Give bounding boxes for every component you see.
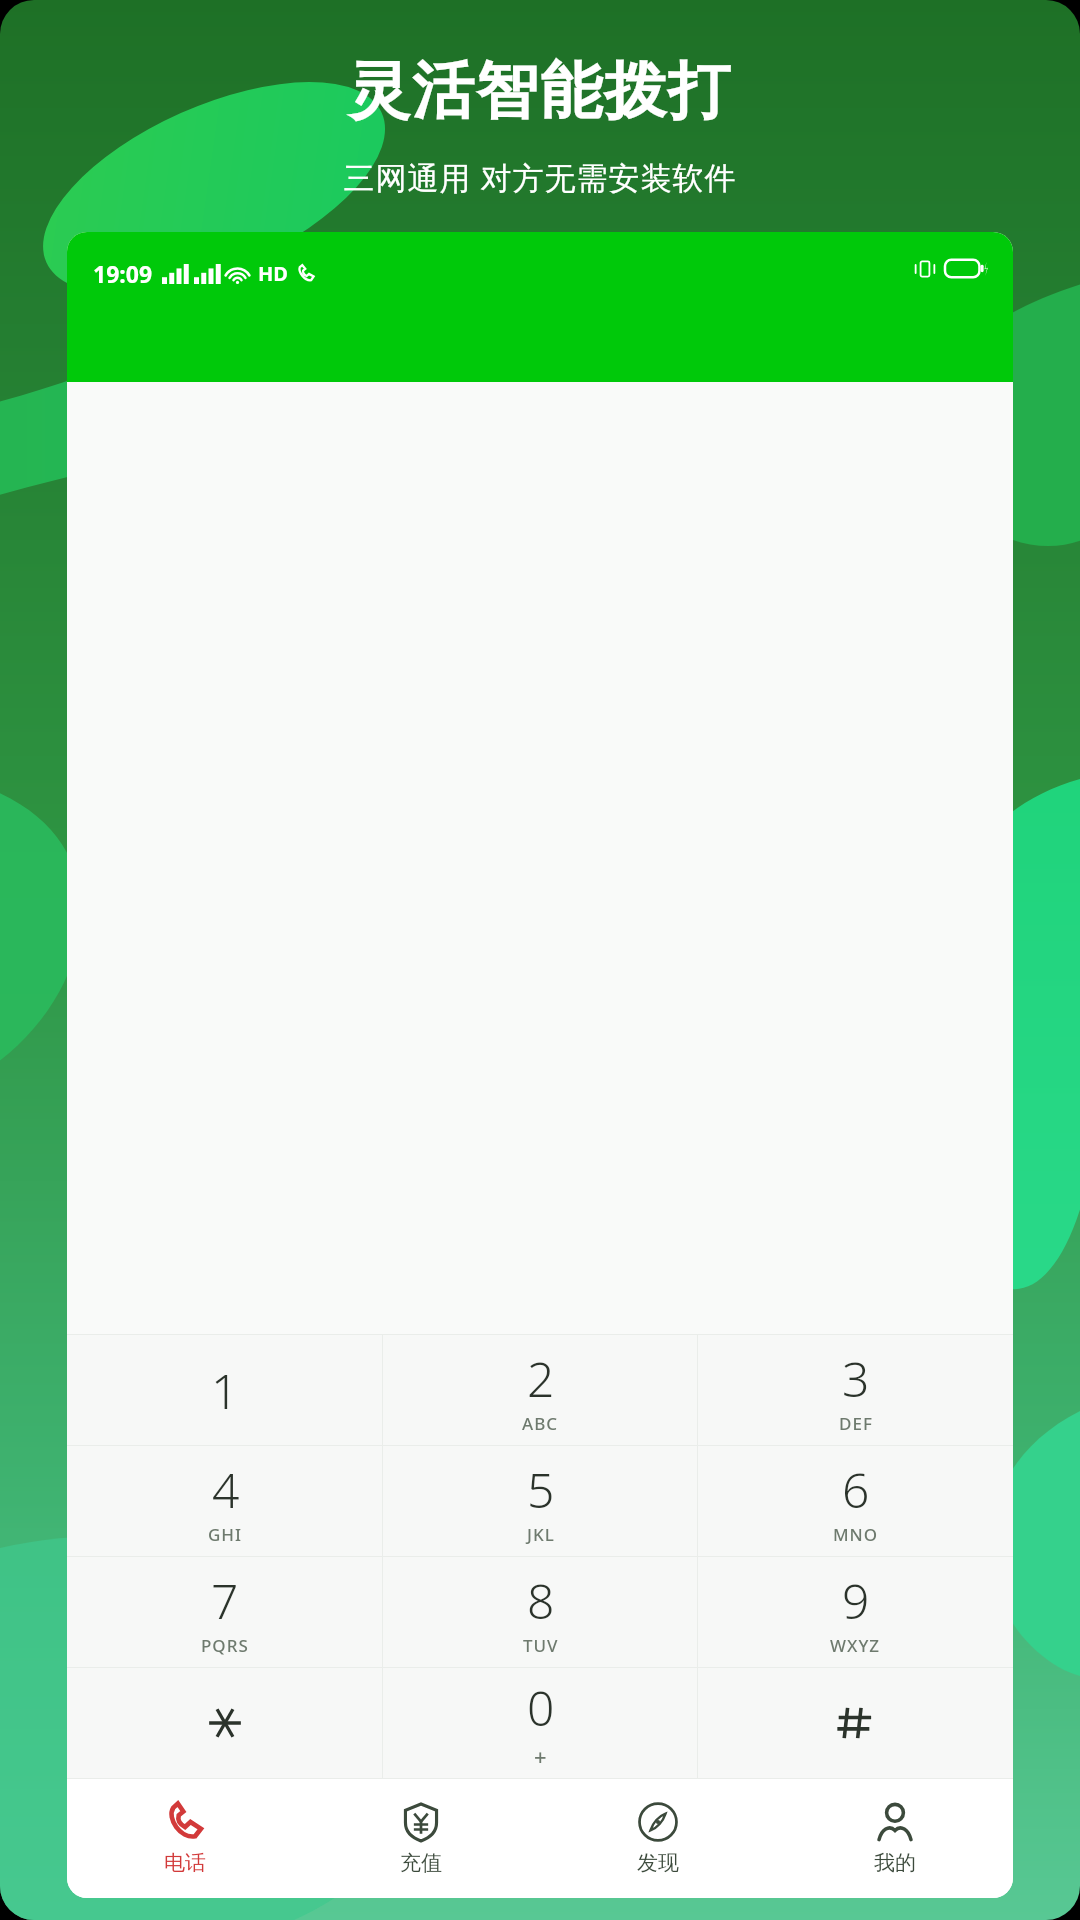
staticText: 1 bbox=[211, 1358, 239, 1423]
button[interactable] bbox=[67, 1668, 383, 1778]
button[interactable]: 充值 bbox=[303, 1778, 539, 1898]
staticText: 5 bbox=[527, 1457, 555, 1522]
button[interactable]: 电话 bbox=[67, 1778, 303, 1898]
staticText: 2 bbox=[527, 1346, 555, 1411]
staticText: DEF bbox=[839, 1412, 873, 1435]
button[interactable]: 7 bbox=[67, 1557, 383, 1667]
staticText: 4 bbox=[212, 1457, 240, 1522]
staticText: JKL bbox=[527, 1523, 555, 1546]
staticText: MNO bbox=[833, 1523, 879, 1546]
staticText: 8 bbox=[527, 1568, 555, 1633]
button[interactable]: 4 bbox=[67, 1446, 383, 1556]
button[interactable]: 1 bbox=[67, 1335, 383, 1445]
button[interactable]: 0 bbox=[383, 1668, 698, 1778]
staticText: 7 bbox=[211, 1568, 239, 1633]
button[interactable]: 6 bbox=[698, 1446, 1013, 1556]
staticText: 我的 bbox=[874, 1850, 916, 1876]
staticText: HD bbox=[258, 260, 288, 287]
staticText: + bbox=[534, 1741, 548, 1771]
staticText: PQRS bbox=[201, 1634, 249, 1657]
button[interactable]: 3 bbox=[698, 1335, 1013, 1445]
button[interactable]: 我的 bbox=[776, 1778, 1013, 1898]
staticText: 三网通用 对方无需安装软件 bbox=[0, 156, 1080, 198]
staticText: 6 bbox=[842, 1457, 870, 1522]
button[interactable] bbox=[698, 1668, 1013, 1778]
staticText: 3 bbox=[842, 1346, 870, 1411]
button[interactable]: 8 bbox=[383, 1557, 698, 1667]
button[interactable]: 5 bbox=[383, 1446, 698, 1556]
staticText: 19:09 bbox=[93, 258, 153, 289]
staticText: 9 bbox=[842, 1568, 870, 1633]
staticText: GHI bbox=[208, 1523, 243, 1546]
staticText: 充值 bbox=[400, 1850, 442, 1876]
button[interactable]: 2 bbox=[383, 1335, 698, 1445]
staticText: 电话 bbox=[164, 1850, 206, 1876]
button[interactable]: 9 bbox=[698, 1557, 1013, 1667]
staticText: TUV bbox=[523, 1634, 559, 1657]
button[interactable]: 发现 bbox=[539, 1778, 776, 1898]
staticText: WXYZ bbox=[830, 1634, 881, 1657]
staticText: 灵活智能拨打 bbox=[0, 52, 1080, 130]
staticText: 0 bbox=[527, 1675, 555, 1740]
staticText: 发现 bbox=[637, 1850, 679, 1876]
staticText: ABC bbox=[522, 1412, 559, 1435]
